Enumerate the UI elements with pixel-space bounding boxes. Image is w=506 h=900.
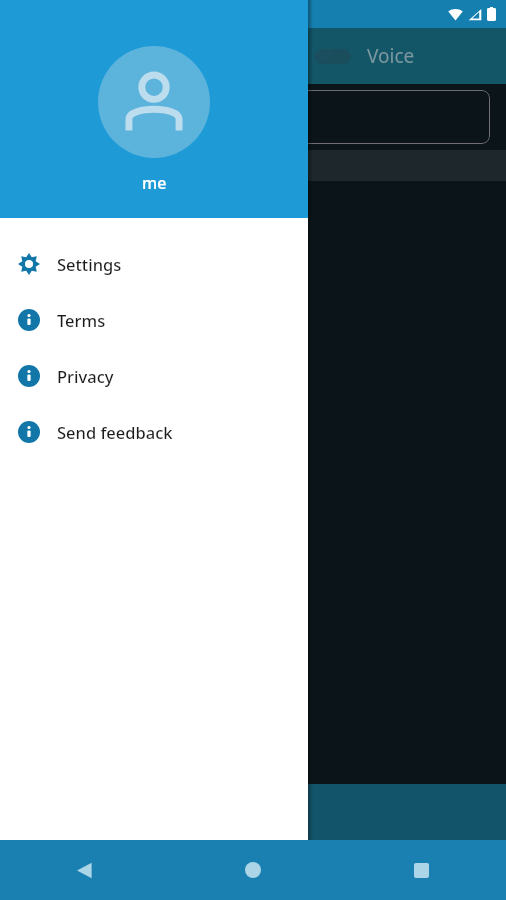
staticText: Settings [57, 253, 122, 275]
staticText: Terms [57, 309, 106, 331]
button[interactable]: Terms [0, 292, 308, 348]
staticText: Privacy [57, 365, 114, 387]
button[interactable]: Recent apps [337, 840, 506, 900]
button[interactable]: Profile photo [98, 46, 210, 158]
button[interactable]: Back [0, 840, 168, 900]
button[interactable]: Send feedback [0, 404, 308, 460]
staticText: Send feedback [57, 421, 173, 443]
button[interactable]: Home [168, 840, 337, 900]
button[interactable]: Name [16, 90, 490, 144]
button[interactable] [315, 49, 351, 64]
staticText: Voice [367, 43, 415, 69]
button[interactable]: Settings [0, 236, 308, 292]
button[interactable]: Privacy [0, 348, 308, 404]
staticText: me [142, 172, 167, 194]
